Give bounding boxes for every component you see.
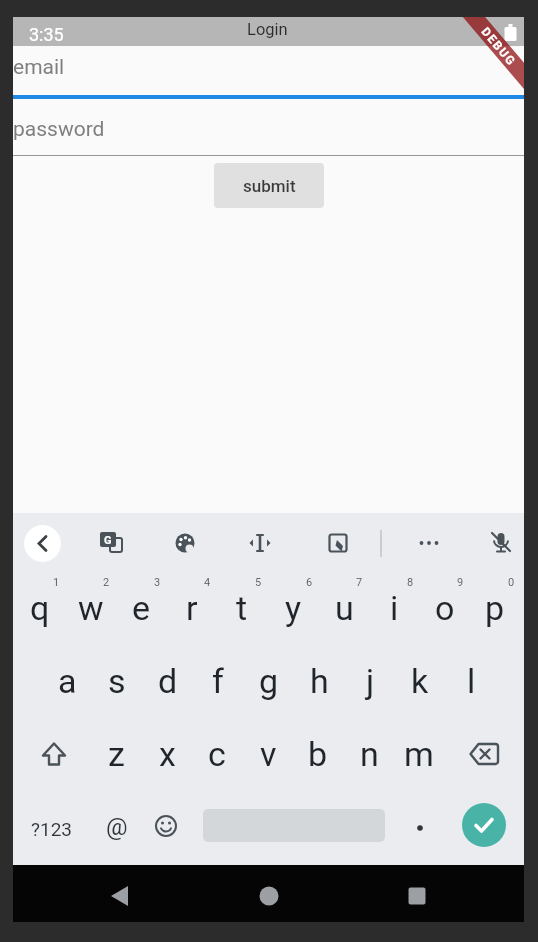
- button[interactable]: y: [268, 571, 318, 644]
- staticText: 6: [306, 576, 313, 589]
- button[interactable]: j: [345, 644, 395, 717]
- staticText: h: [310, 661, 329, 701]
- button[interactable]: f: [193, 644, 243, 717]
- button[interactable]: email: [13, 55, 524, 79]
- staticText: a: [58, 661, 77, 701]
- staticText: v: [260, 734, 277, 774]
- staticText: i: [390, 588, 399, 628]
- staticText: w: [78, 588, 104, 628]
- button[interactable]: b: [293, 717, 343, 790]
- button[interactable]: w: [66, 571, 116, 644]
- staticText: e: [132, 588, 151, 628]
- button[interactable]: [416, 533, 442, 553]
- staticText: m: [404, 734, 434, 774]
- staticText: y: [285, 588, 302, 628]
- button[interactable]: p: [470, 571, 520, 644]
- staticText: 3: [154, 576, 161, 589]
- staticText: 1: [53, 576, 60, 589]
- button[interactable]: [327, 532, 349, 554]
- staticText: k: [411, 661, 429, 701]
- button[interactable]: o: [420, 571, 470, 644]
- button[interactable]: m: [394, 717, 444, 790]
- staticText: x: [159, 734, 176, 774]
- button[interactable]: l: [446, 644, 496, 717]
- button[interactable]: i: [369, 571, 419, 644]
- button[interactable]: c: [192, 717, 242, 790]
- staticText: b: [308, 734, 328, 774]
- staticText: s: [108, 661, 126, 701]
- staticText: ?123: [31, 818, 73, 840]
- button[interactable]: [249, 876, 289, 916]
- button[interactable]: v: [243, 717, 293, 790]
- staticText: 7: [356, 576, 363, 589]
- button[interactable]: r: [167, 571, 217, 644]
- staticText: 3:35: [29, 24, 64, 45]
- button[interactable]: d: [143, 644, 193, 717]
- staticText: p: [485, 588, 505, 628]
- button[interactable]: t: [217, 571, 267, 644]
- button[interactable]: @: [92, 799, 142, 855]
- button[interactable]: e: [116, 571, 166, 644]
- button[interactable]: [397, 876, 437, 916]
- staticText: 2: [103, 576, 110, 589]
- staticText: f: [212, 661, 224, 701]
- staticText: q: [30, 588, 50, 628]
- staticText: 9: [457, 576, 464, 589]
- staticText: l: [467, 661, 476, 701]
- button[interactable]: [174, 532, 196, 554]
- button[interactable]: z: [91, 717, 141, 790]
- button[interactable]: [146, 806, 186, 846]
- button[interactable]: [402, 810, 438, 846]
- staticText: u: [335, 588, 354, 628]
- staticText: g: [259, 661, 279, 701]
- button[interactable]: [24, 525, 61, 562]
- staticText: c: [208, 734, 226, 774]
- staticText: o: [435, 588, 455, 628]
- staticText: 0: [508, 576, 515, 589]
- staticText: r: [186, 588, 198, 628]
- button[interactable]: x: [142, 717, 192, 790]
- button[interactable]: s: [92, 644, 142, 717]
- button[interactable]: a: [42, 644, 92, 717]
- staticText: d: [158, 661, 178, 701]
- button[interactable]: [101, 876, 141, 916]
- button[interactable]: g: [244, 644, 294, 717]
- staticText: DEBUG: [478, 25, 519, 69]
- button[interactable]: ?123: [22, 801, 82, 857]
- staticText: password: [13, 117, 105, 141]
- staticText: t: [236, 588, 248, 628]
- button[interactable]: [30, 731, 78, 779]
- staticText: G: [104, 534, 112, 547]
- staticText: 5: [255, 576, 262, 589]
- button[interactable]: password: [13, 117, 524, 141]
- staticText: Login: [247, 20, 288, 39]
- staticText: 8: [407, 576, 414, 589]
- staticText: email: [13, 55, 65, 79]
- staticText: n: [360, 734, 379, 774]
- button[interactable]: h: [294, 644, 344, 717]
- staticText: 4: [204, 576, 211, 589]
- button[interactable]: [462, 803, 506, 847]
- staticText: z: [108, 734, 125, 774]
- button[interactable]: submit: [214, 163, 324, 208]
- staticText: submit: [243, 176, 296, 196]
- button[interactable]: k: [395, 644, 445, 717]
- button[interactable]: u: [319, 571, 369, 644]
- button[interactable]: q: [15, 571, 65, 644]
- button[interactable]: [247, 532, 273, 554]
- button[interactable]: G: [97, 528, 126, 558]
- button[interactable]: n: [344, 717, 394, 790]
- staticText: j: [366, 661, 375, 701]
- button[interactable]: [460, 730, 508, 778]
- staticText: @: [106, 813, 128, 841]
- button[interactable]: [488, 530, 514, 556]
